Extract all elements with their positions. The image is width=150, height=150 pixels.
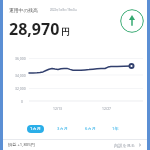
button[interactable]: 入金 [120, 9, 144, 33]
staticText: 28,970 [9, 18, 60, 40]
staticText: 3カ月 [57, 126, 68, 132]
staticText: 内訳を見る [114, 143, 136, 148]
staticText: 1カ月 [30, 126, 41, 132]
staticText: 2022年1月8日 19時0分 [50, 8, 77, 12]
staticText: 1年 [112, 126, 119, 132]
button[interactable]: 3カ月 [54, 125, 71, 133]
staticText: 32,000 [15, 86, 26, 91]
staticText: 36,000 [15, 56, 26, 61]
button[interactable]: 6カ月 [82, 125, 99, 133]
staticText: 12/13 [53, 106, 63, 111]
staticText: 運用中の残高 [9, 7, 38, 13]
button[interactable]: 損益 +1,805円 [8, 142, 142, 148]
staticText: 6カ月 [85, 126, 96, 132]
button[interactable]: 1カ月 [27, 125, 44, 133]
staticText: 円 [61, 27, 70, 38]
staticText: 34,000 [15, 73, 26, 78]
staticText: 損益 +1,805円 [8, 142, 35, 148]
staticText: 12/27 [102, 106, 112, 111]
staticText: 0 [21, 99, 23, 104]
button[interactable]: 1年 [109, 125, 122, 133]
